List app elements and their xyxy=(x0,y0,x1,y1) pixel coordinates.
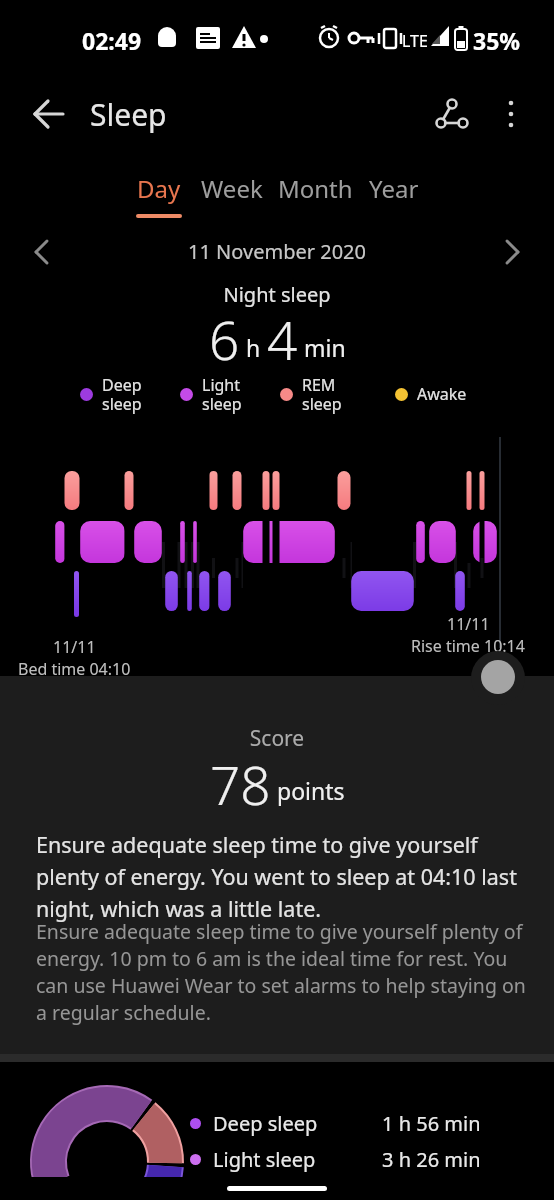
staticText: Light sleep xyxy=(202,374,242,415)
button[interactable]: Month xyxy=(271,172,359,222)
staticText: Night sleep xyxy=(0,281,554,308)
staticText: h xyxy=(240,332,267,363)
button[interactable] xyxy=(490,85,534,145)
staticText: Week xyxy=(201,172,263,205)
staticText: 11 November 2020 xyxy=(0,238,554,265)
staticText: 3 h 26 min xyxy=(382,1146,481,1173)
staticText: Year xyxy=(369,172,419,205)
staticText: Awake xyxy=(417,383,467,405)
staticText: Light sleep xyxy=(213,1146,316,1173)
staticText: Score xyxy=(0,724,554,753)
staticText: 11/11 xyxy=(53,636,96,658)
button[interactable] xyxy=(425,85,481,141)
button[interactable]: Deep sleep xyxy=(190,1106,520,1140)
staticText: 4 xyxy=(267,303,298,373)
staticText: min xyxy=(298,332,346,363)
staticText: REM sleep xyxy=(302,374,342,415)
staticText: Deep sleep xyxy=(213,1110,318,1137)
staticText: 1 h 56 min xyxy=(382,1110,481,1137)
staticText: Deep sleep xyxy=(102,374,142,415)
staticText: Day xyxy=(137,172,181,205)
staticText: 78 xyxy=(210,748,271,816)
button[interactable]: Day xyxy=(125,172,193,222)
staticText: Sleep xyxy=(90,94,167,135)
button[interactable] xyxy=(498,238,528,268)
button[interactable]: Year xyxy=(359,172,429,222)
button[interactable] xyxy=(28,238,58,268)
staticText: LTE xyxy=(402,30,428,52)
button[interactable]: Light sleep xyxy=(190,1142,520,1176)
staticText: Rise time 10:14 xyxy=(411,635,525,657)
staticText: 02:49 xyxy=(82,25,142,56)
button[interactable]: Week xyxy=(193,172,271,222)
staticText: points xyxy=(271,775,345,806)
button[interactable] xyxy=(20,85,80,145)
staticText: Month xyxy=(278,172,353,205)
staticText: 11/11 xyxy=(447,613,490,635)
staticText: Ensure adequate sleep time to give yours… xyxy=(36,830,517,923)
staticText: 35% xyxy=(473,25,521,56)
staticText: 6 xyxy=(209,303,240,373)
staticText: Ensure adequate sleep time to give yours… xyxy=(36,918,526,1026)
staticText: Bed time 04:10 xyxy=(18,658,131,680)
